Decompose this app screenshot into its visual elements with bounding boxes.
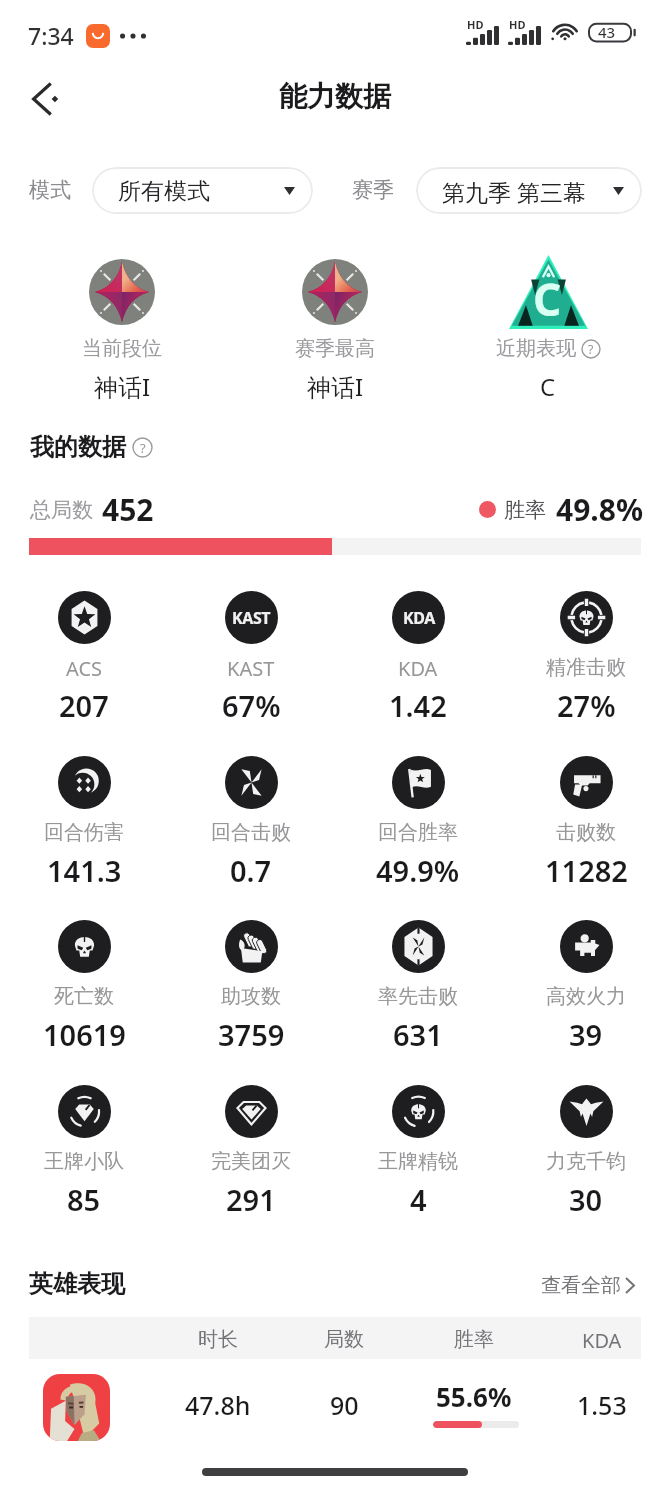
button[interactable]: Back <box>19 75 71 125</box>
button[interactable]: 所有模式 <box>92 167 313 214</box>
staticText: 完美团灭 <box>211 1149 291 1174</box>
staticText: 赛季最高 <box>295 336 375 361</box>
staticText: KAST <box>227 655 275 682</box>
button[interactable]: 击败数 <box>503 756 669 886</box>
staticText: 67% <box>222 686 281 725</box>
button[interactable]: 死亡数 <box>1 920 167 1050</box>
button[interactable]: 赛季最高 <box>228 248 442 408</box>
staticText: 4 <box>410 1180 427 1219</box>
staticText: 1.53 <box>577 1388 627 1418</box>
staticText: 7:34 <box>28 20 74 51</box>
staticText: 局数 <box>324 1327 364 1351</box>
button[interactable]: 助攻数 <box>168 920 334 1050</box>
staticText: 赛季 <box>352 177 394 203</box>
staticText: 总局数 <box>30 497 93 523</box>
staticText: 631 <box>393 1015 443 1054</box>
button[interactable]: KAST <box>168 591 334 721</box>
staticText: 我的数据 <box>30 432 126 462</box>
staticText: 55.6% <box>436 1379 512 1409</box>
staticText: 10619 <box>43 1015 126 1054</box>
staticText: 死亡数 <box>54 984 114 1009</box>
staticText: 胜率 <box>454 1327 494 1351</box>
staticText: 452 <box>102 489 154 530</box>
staticText: C <box>533 269 562 329</box>
staticText: ? <box>140 439 146 457</box>
staticText: 率先击败 <box>378 984 458 1009</box>
staticText: KDA <box>403 607 435 629</box>
staticText: 85 <box>67 1180 101 1219</box>
staticText: 神话I <box>94 370 151 403</box>
button[interactable]: 高效火力 <box>503 920 669 1050</box>
staticText: 第九季 第三幕 <box>442 176 586 207</box>
staticText: 27% <box>557 686 616 725</box>
staticText: 精准击败 <box>546 655 626 680</box>
staticText: 助攻数 <box>221 984 281 1009</box>
button[interactable]: 率先击败 <box>335 920 501 1050</box>
staticText: 神话I <box>307 370 364 403</box>
staticText: 207 <box>59 686 109 725</box>
staticText: 43 <box>598 22 616 42</box>
button[interactable]: 回合伤害 <box>1 756 167 886</box>
staticText: 回合伤害 <box>44 820 124 845</box>
button[interactable]: 查看全部 <box>541 1273 635 1298</box>
staticText: 141.3 <box>47 851 122 890</box>
button[interactable]: 第九季 第三幕 <box>416 167 642 214</box>
staticText: 291 <box>226 1180 276 1219</box>
staticText: 王牌小队 <box>44 1149 124 1174</box>
button[interactable]: 回合击败 <box>168 756 334 886</box>
staticText: 英雄表现 <box>29 1269 125 1299</box>
button[interactable]: ACS <box>1 591 167 721</box>
staticText: ? <box>588 341 594 358</box>
staticText: 49.8% <box>556 489 643 530</box>
staticText: 模式 <box>29 177 71 203</box>
button[interactable]: 回合胜率 <box>335 756 501 886</box>
staticText: C <box>540 370 556 403</box>
button[interactable]: 王牌精锐 <box>335 1085 501 1215</box>
staticText: 47.8h <box>185 1388 251 1418</box>
staticText: 0.7 <box>230 851 272 890</box>
staticText: 90 <box>330 1388 359 1418</box>
staticText: 当前段位 <box>82 336 162 361</box>
staticText: 高效火力 <box>546 984 626 1009</box>
staticText: 30 <box>569 1180 603 1219</box>
button[interactable] <box>29 1366 641 1448</box>
button[interactable]: C <box>441 248 655 408</box>
staticText: 39 <box>569 1015 603 1054</box>
staticText: 能力数据 <box>279 79 391 114</box>
staticText: ACS <box>66 655 102 682</box>
staticText: 49.9% <box>376 851 460 890</box>
button[interactable]: 力克千钧 <box>503 1085 669 1215</box>
button[interactable]: 王牌小队 <box>1 1085 167 1215</box>
staticText: 所有模式 <box>118 177 210 206</box>
staticText: 查看全部 <box>541 1273 621 1298</box>
staticText: 击败数 <box>556 820 616 845</box>
staticText: HD <box>467 17 484 32</box>
staticText: HD <box>509 17 526 32</box>
staticText: 王牌精锐 <box>378 1149 458 1174</box>
button[interactable]: 完美团灭 <box>168 1085 334 1215</box>
staticText: 近期表现 <box>496 336 576 361</box>
staticText: 力克千钧 <box>546 1149 626 1174</box>
staticText: 3759 <box>218 1015 285 1054</box>
staticText: KAST <box>232 607 271 629</box>
staticText: 时长 <box>198 1327 238 1351</box>
staticText: 回合胜率 <box>378 820 458 845</box>
staticText: KDA <box>398 655 438 682</box>
button[interactable]: 精准击败 <box>503 591 669 721</box>
staticText: 胜率 <box>504 497 546 523</box>
staticText: 11282 <box>545 851 628 890</box>
button[interactable]: 当前段位 <box>15 248 229 408</box>
staticText: 回合击败 <box>211 820 291 845</box>
button[interactable]: KDA <box>335 591 501 721</box>
staticText: KDA <box>582 1327 622 1351</box>
staticText: 1.42 <box>389 686 447 725</box>
